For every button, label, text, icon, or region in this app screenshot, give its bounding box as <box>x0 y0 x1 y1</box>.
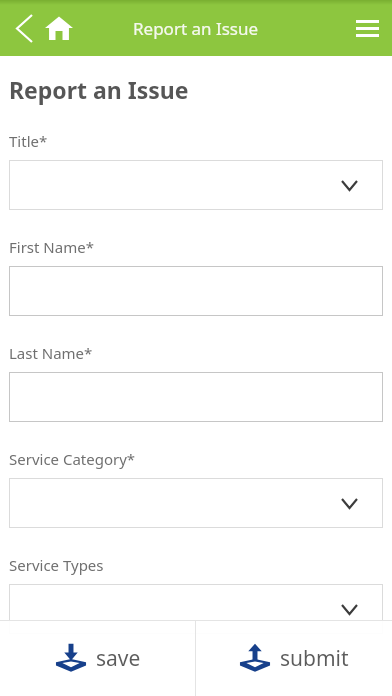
button[interactable] <box>9 372 383 422</box>
button[interactable]: Home <box>37 6 81 50</box>
staticText: Report an Issue <box>9 74 189 105</box>
staticText: Service Category* <box>9 449 136 469</box>
staticText: Service Types <box>9 555 104 575</box>
staticText: Last Name* <box>9 343 93 363</box>
staticText: submit <box>280 644 349 673</box>
staticText: save <box>96 644 141 673</box>
staticText: Report an Issue <box>133 17 259 40</box>
button[interactable]: Open dropdown <box>9 160 383 210</box>
button[interactable]: Open dropdown <box>9 584 383 634</box>
button[interactable]: Back <box>2 6 46 50</box>
button[interactable]: Open dropdown <box>9 478 383 528</box>
button[interactable]: Menu <box>345 6 389 50</box>
button[interactable]: save <box>0 621 195 696</box>
staticText: First Name* <box>9 237 94 257</box>
staticText: Title* <box>9 131 48 151</box>
button[interactable] <box>9 266 383 316</box>
button[interactable]: submit <box>196 621 392 696</box>
